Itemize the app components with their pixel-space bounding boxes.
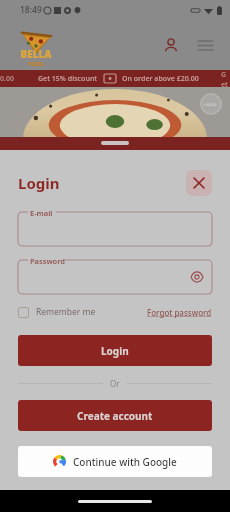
staticText: Get 15% discount	[38, 74, 98, 84]
staticText: Or	[110, 378, 120, 389]
staticText: BELLA	[20, 47, 52, 61]
staticText: On order above £20.00	[122, 74, 199, 84]
staticText: PIZZA	[28, 60, 44, 67]
staticText: 18:49	[20, 4, 42, 16]
staticText: Create account	[77, 409, 153, 423]
staticText: E-mail	[30, 208, 53, 218]
staticText: Forgot password	[147, 307, 212, 318]
staticText: Get	[221, 70, 230, 87]
button[interactable]: Account	[158, 32, 184, 58]
staticText: Password	[30, 256, 66, 266]
button[interactable]: Menu	[192, 32, 218, 58]
staticText: Login	[18, 173, 60, 193]
staticText: Continue with Google	[73, 455, 177, 469]
staticText: Login	[101, 344, 129, 358]
button[interactable]: Close	[186, 170, 212, 196]
button[interactable]: Continue with Google	[18, 446, 212, 477]
staticText: Remember me	[36, 306, 96, 318]
button[interactable]: Login	[18, 335, 212, 366]
button[interactable]: Bella Pizza home	[12, 23, 60, 67]
staticText: 0.00	[0, 74, 14, 84]
button[interactable]: Create account	[18, 400, 212, 431]
staticText: HALAL	[204, 102, 218, 107]
button[interactable]: Forgot password	[147, 307, 212, 318]
button[interactable]: Show password	[188, 268, 206, 286]
button[interactable]: Remember me	[18, 306, 96, 318]
